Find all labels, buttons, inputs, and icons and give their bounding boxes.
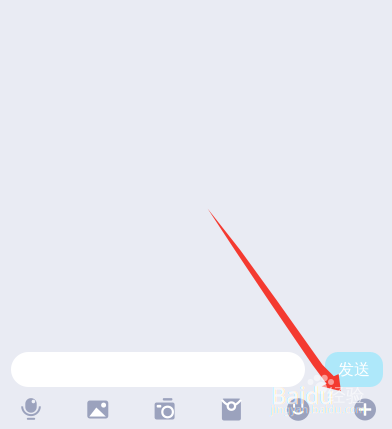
staticText: 发送 [338, 360, 370, 379]
staticText: 经验 [327, 384, 365, 407]
button[interactable]: 发送 [325, 352, 383, 387]
button[interactable]: Photos [85, 396, 111, 422]
button[interactable]: Emoji [285, 396, 311, 422]
button[interactable]: Voice [18, 396, 44, 422]
button[interactable]: Red packet [218, 396, 244, 422]
button[interactable]: More [352, 396, 378, 422]
button[interactable]: Camera [152, 396, 178, 422]
staticText: Baidu [271, 380, 333, 410]
staticText: jingyan.baidu.com [270, 402, 365, 416]
